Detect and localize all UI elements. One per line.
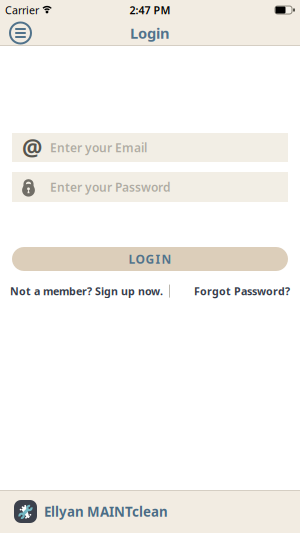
staticText: Forgot Password? — [194, 284, 290, 298]
staticText: 2:47 PM — [129, 3, 170, 17]
button[interactable]: LOGIN — [12, 247, 288, 271]
staticText: Carrier — [5, 3, 39, 17]
staticText: Not a member? Sign up now. — [10, 284, 163, 298]
staticText: Enter your Email — [50, 139, 147, 155]
button[interactable]: @ — [12, 133, 288, 162]
staticText: @ — [22, 132, 42, 162]
button[interactable]: Not a member? Sign up now. — [10, 284, 163, 298]
staticText: Enter your Password — [50, 179, 171, 195]
staticText: LOGIN — [128, 251, 171, 267]
staticText: Login — [130, 23, 170, 43]
button[interactable]: Menu — [0, 22, 31, 43]
staticText: Ellyan MAINTclean — [44, 503, 168, 520]
button[interactable]: Enter your Password — [12, 172, 288, 202]
button[interactable]: Forgot Password? — [194, 284, 290, 298]
